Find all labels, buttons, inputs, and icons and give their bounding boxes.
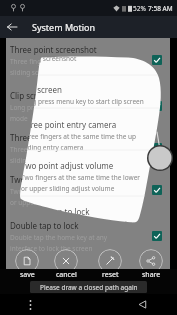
button[interactable]: Toggle Two point adjust volume [152,185,162,195]
button[interactable]: Toggle Clip screen [152,101,162,111]
staticText: interface to lock the screen [21,230,104,239]
staticText: Long press menu key to start clip screen [21,97,144,106]
staticText: sliding screenshot [21,54,77,63]
staticText: 52% [133,4,146,13]
staticText: or upper sliding adjust volume [10,198,104,207]
staticText: reset [102,270,119,279]
button[interactable]: Toggle Three point screenshot [152,55,162,65]
staticText: share [142,270,161,279]
button[interactable]: Toggle Double tap to lock [152,231,162,241]
staticText: Double tap the home key at any [10,233,108,242]
staticText: Three point entry camera [10,132,106,143]
staticText: interface to lock the screen [10,244,93,253]
staticText: Please draw a closed path again [40,283,138,292]
staticText: Three fingers at the same time the up [10,145,126,154]
staticText: 7:58 AM [148,4,173,13]
staticText: Double tap to lock the home key at any [21,219,141,228]
staticText: or upper sliding adjust volume [21,184,115,193]
staticText: Two point adjust volume [10,174,103,185]
staticText: Three fingers at the same time the [10,57,116,66]
staticText: mode [10,114,28,123]
button[interactable]: save [15,249,39,273]
staticText: sliding entry camera [10,156,73,165]
button[interactable]: Back [134,294,150,315]
button[interactable]: Navigate up [0,16,24,38]
button[interactable]: share [139,249,163,273]
button[interactable]: reset [98,249,122,273]
staticText: Three fingers at the same time the up [21,132,137,141]
staticText: cancel [56,270,77,279]
staticText: System Motion [32,21,96,33]
staticText: save [20,270,35,279]
staticText: Clip screen [21,84,62,95]
staticText: Double tap to lock [10,220,79,231]
staticText: Clip screen [10,90,51,101]
staticText: Three point entry camera [21,119,117,130]
staticText: sliding screenshot [10,68,66,77]
staticText: Two point adjust volume [21,160,114,171]
staticText: sliding entry camera [21,143,84,152]
staticText: Three point screenshot [10,44,97,55]
button[interactable]: Menu [22,294,38,315]
staticText: Two fingers at the same time the lower [10,187,130,196]
button[interactable]: Toggle Three point entry camera [152,143,162,153]
button[interactable]: cancel [54,249,78,273]
staticText: Long press menu key to start clip screen [10,103,133,112]
staticText: Two fingers at the same time the lower [21,173,141,182]
staticText: Double tap to lock [21,206,90,217]
